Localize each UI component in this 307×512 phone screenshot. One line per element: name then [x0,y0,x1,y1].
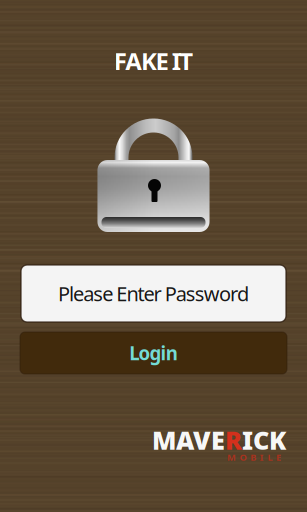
button[interactable]: Please Enter Password [21,265,286,322]
staticText: MOBILE [227,451,281,463]
staticText: MAVE [152,423,225,457]
staticText: R [225,423,242,457]
staticText: Login [129,341,178,365]
button[interactable]: Login [20,332,287,374]
staticText: ICK [242,423,286,457]
staticText: FAKE IT [114,45,193,77]
staticText: Please Enter Password [58,280,249,307]
